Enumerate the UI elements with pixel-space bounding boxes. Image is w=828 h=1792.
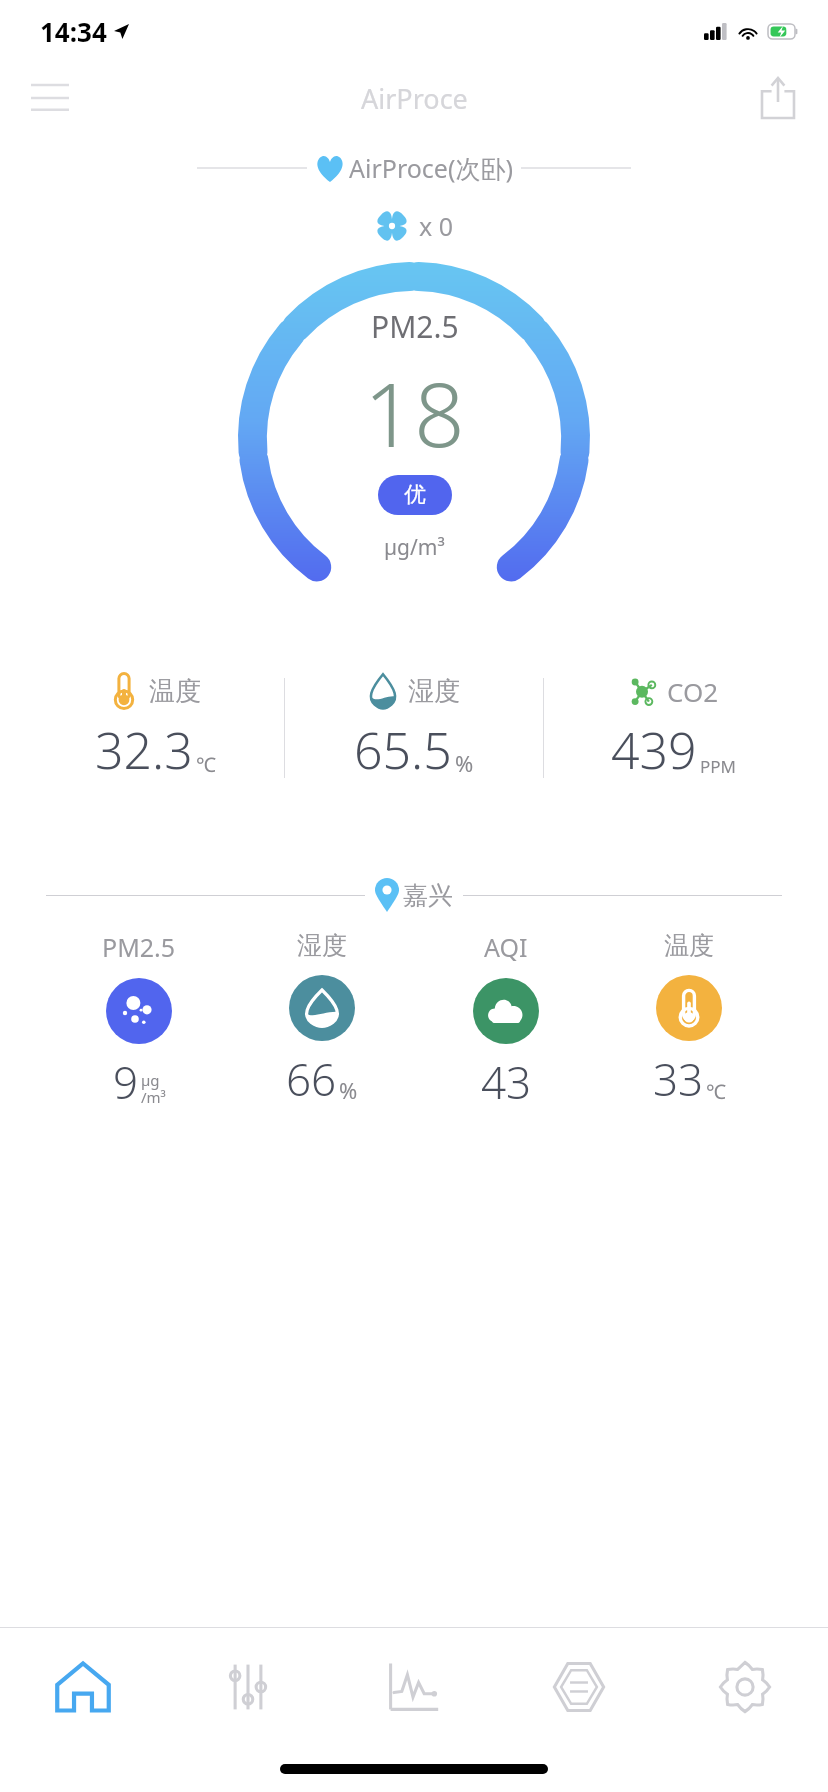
staticText: 43 [481, 1052, 532, 1112]
staticText: ℃ [196, 751, 216, 778]
staticText: % [455, 748, 474, 778]
button[interactable]: 温度 [26, 672, 284, 784]
staticText: 嘉兴 [403, 880, 453, 911]
staticText: PM2.5 [102, 930, 176, 964]
staticText: 优 [404, 481, 426, 509]
staticText: 65.5 [354, 716, 452, 784]
button[interactable]: Settings [662, 1628, 828, 1746]
button[interactable]: AirProce(次卧) [0, 148, 828, 188]
staticText: x 0 [419, 209, 454, 243]
staticText: µg /m³ [141, 1070, 166, 1108]
staticText: 14:34 [40, 14, 107, 49]
button[interactable]: 温度 [614, 930, 764, 1109]
staticText: 湿度 [408, 675, 460, 708]
staticText: 66 [286, 1049, 337, 1109]
staticText: 439 [611, 716, 697, 784]
button[interactable]: Menu [18, 66, 82, 130]
staticText: ℃ [706, 1078, 726, 1105]
staticText: 温度 [149, 675, 201, 708]
button[interactable]: 优 [378, 475, 452, 515]
staticText: AQI [484, 930, 528, 964]
staticText: PM2.5 [371, 306, 459, 347]
button[interactable]: 嘉兴 [46, 872, 782, 918]
staticText: 33 [653, 1049, 704, 1109]
button[interactable]: CO2 [544, 672, 802, 784]
staticText: 32.3 [95, 716, 193, 784]
button[interactable]: PM2.5 [64, 930, 214, 1112]
staticText: 18 [364, 353, 465, 473]
staticText: PPM [700, 755, 736, 778]
staticText: µg/m³ [384, 533, 445, 562]
button[interactable]: AQI [431, 930, 581, 1112]
button[interactable]: Controls [165, 1628, 330, 1746]
staticText: % [339, 1075, 358, 1105]
button[interactable]: Filter [496, 1628, 662, 1746]
staticText: 9 [113, 1052, 139, 1112]
staticText: AirProce [361, 80, 468, 117]
button[interactable]: 湿度 [247, 930, 397, 1109]
button[interactable]: Statistics [330, 1628, 496, 1746]
staticText: CO2 [667, 674, 719, 709]
staticText: 湿度 [297, 930, 347, 961]
staticText: 温度 [664, 930, 714, 961]
button[interactable]: 湿度 [285, 672, 543, 784]
button[interactable]: Home [0, 1628, 165, 1746]
staticText: AirProce(次卧) [349, 151, 513, 185]
button[interactable]: Share [746, 66, 810, 130]
